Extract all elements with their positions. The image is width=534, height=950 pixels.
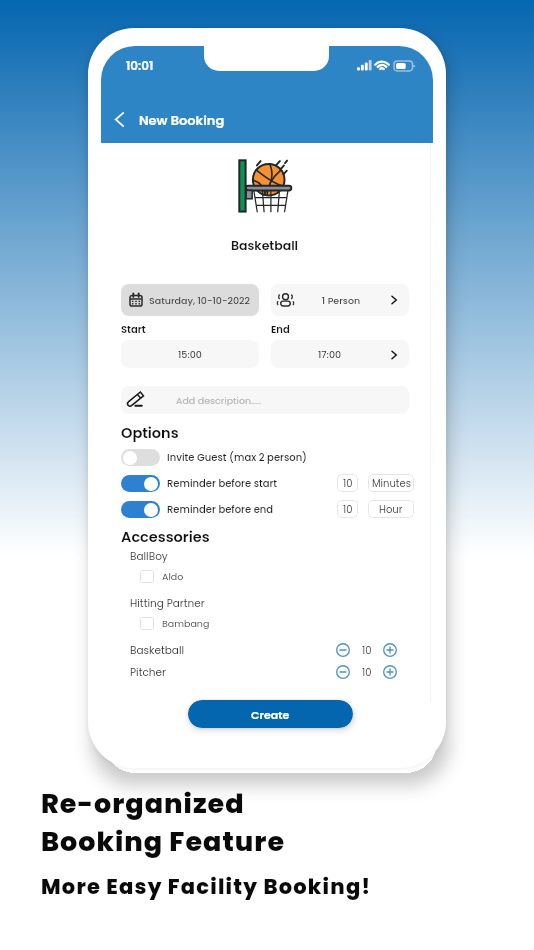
staticText: New Booking — [139, 111, 225, 129]
button[interactable]: 10 — [337, 474, 358, 492]
staticText: Invite Guest (max 2 person) — [167, 450, 414, 464]
button[interactable]: Hour — [368, 500, 414, 518]
staticText: End — [271, 322, 290, 336]
staticText: 10 — [343, 502, 353, 516]
staticText: Basketball — [231, 237, 299, 254]
button[interactable]: 1 Person — [271, 284, 409, 316]
button[interactable]: Aldo — [140, 569, 260, 583]
staticText: More Easy Facility Booking! — [41, 872, 372, 901]
staticText: Reminder before start — [167, 476, 337, 490]
staticText: Add description..... — [176, 394, 262, 407]
button[interactable]: Decrease — [336, 643, 350, 657]
button[interactable]: Back — [109, 106, 129, 132]
staticText: Start — [121, 322, 271, 336]
staticText: BallBoy — [130, 549, 168, 564]
staticText: Minutes — [372, 476, 411, 490]
staticText: 10 — [362, 665, 372, 679]
button[interactable]: Pitcher — [130, 664, 397, 680]
button[interactable]: Basketball — [130, 642, 397, 658]
button[interactable]: Saturday, 10-10-2022 — [121, 284, 259, 316]
button[interactable]: Decrease — [336, 665, 350, 679]
button[interactable]: Minutes — [368, 474, 414, 492]
staticText: 10 — [343, 476, 353, 490]
staticText: Saturday, 10-10-2022 — [149, 294, 251, 307]
button[interactable]: 10 — [337, 500, 358, 518]
staticText: Aldo — [162, 570, 184, 583]
staticText: Accessories — [121, 527, 210, 547]
button[interactable]: Reminder before end — [121, 500, 414, 518]
staticText: Bambang — [162, 617, 210, 630]
staticText: 10:01 — [126, 57, 154, 74]
button[interactable]: Bambang — [140, 616, 260, 630]
button[interactable]: Invite Guest (max 2 person) — [121, 448, 414, 466]
button[interactable]: Add description..... — [121, 386, 409, 414]
staticText: Pitcher — [130, 665, 336, 680]
staticText: Basketball — [130, 643, 336, 658]
staticText: Create — [251, 707, 290, 722]
staticText: Hitting Partner — [130, 596, 205, 611]
button[interactable]: Reminder before start — [121, 474, 414, 492]
button[interactable]: 15:00 — [121, 340, 259, 368]
staticText: 15:00 — [178, 348, 202, 361]
button[interactable]: Increase — [383, 643, 397, 657]
button[interactable]: Increase — [383, 665, 397, 679]
staticText: 1 Person — [294, 294, 388, 307]
staticText: 17:00 — [271, 348, 388, 361]
button[interactable]: Create — [188, 700, 353, 728]
staticText: Booking Feature — [41, 823, 286, 861]
staticText: Options — [121, 423, 179, 443]
button[interactable]: Back — [101, 73, 433, 143]
staticText: Hour — [379, 502, 403, 516]
staticText: 10 — [362, 643, 372, 657]
staticText: Re-organized — [41, 785, 245, 823]
button[interactable]: 17:00 — [271, 340, 409, 368]
staticText: Reminder before end — [167, 502, 337, 516]
